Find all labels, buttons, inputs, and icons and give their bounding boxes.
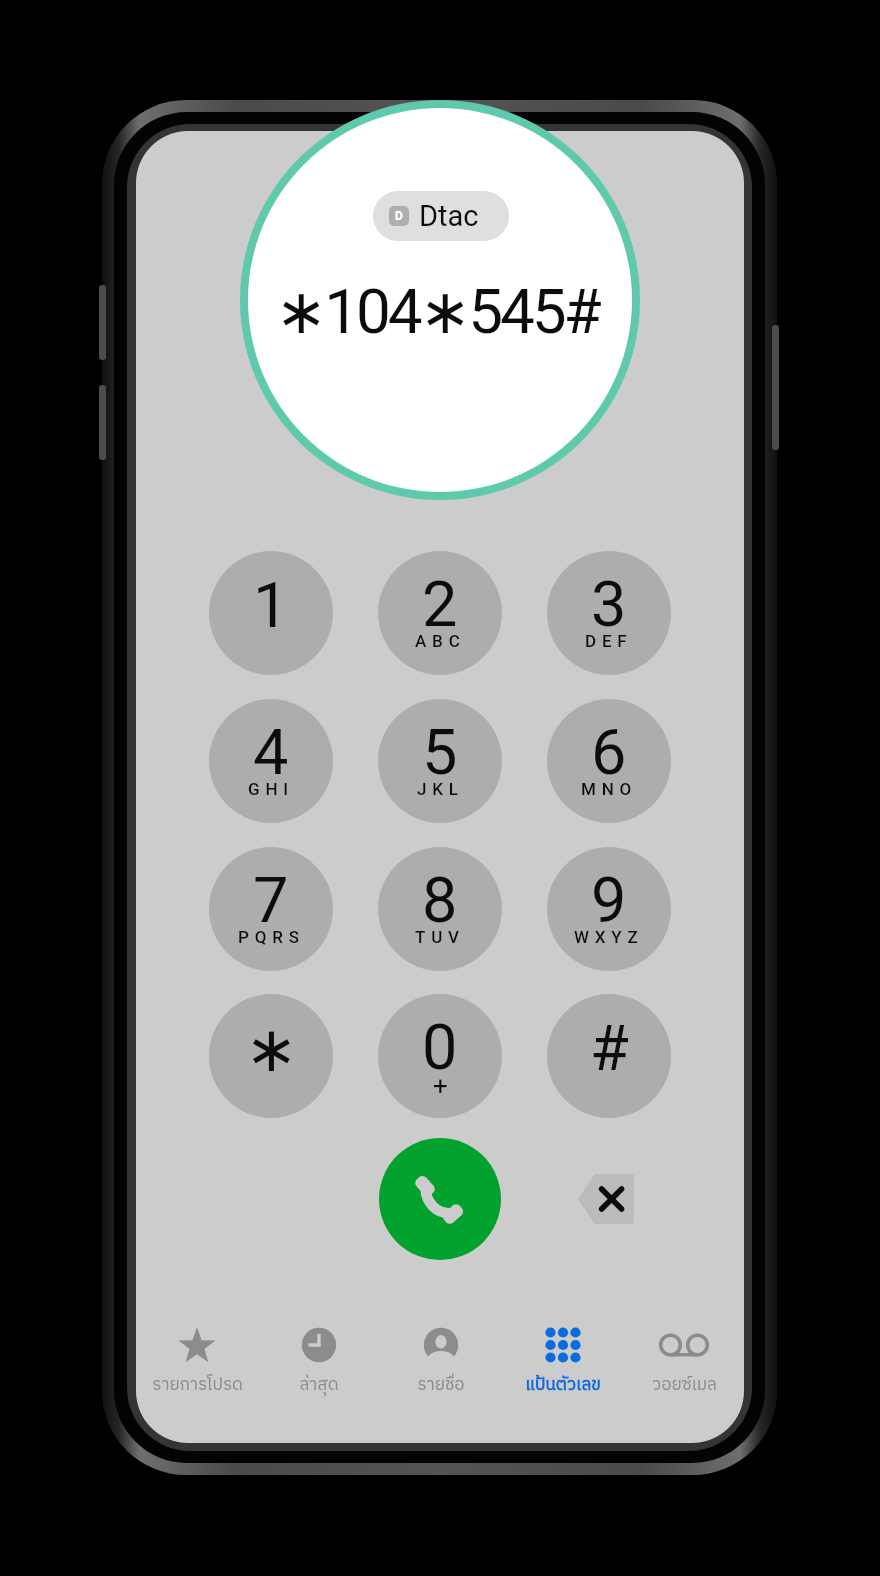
staticText: ล่าสุด	[299, 1371, 339, 1399]
button[interactable]: ∗	[209, 994, 333, 1118]
staticText: ∗104∗545#	[275, 275, 599, 348]
button[interactable]: #	[547, 994, 671, 1118]
staticText: 1	[253, 569, 289, 643]
staticText: MNO	[581, 779, 638, 799]
button[interactable]: วอยซ์เมล	[624, 1310, 744, 1420]
staticText: 7	[253, 864, 289, 938]
staticText: DEF	[585, 631, 633, 651]
staticText: ∗	[245, 1013, 298, 1086]
staticText: วอยซ์เมล	[652, 1371, 717, 1399]
staticText: 6	[591, 716, 627, 790]
button[interactable]: D	[373, 191, 509, 241]
staticText: D	[395, 209, 403, 223]
button[interactable]: Call	[379, 1138, 501, 1260]
staticText: 5	[422, 716, 458, 790]
staticText: Dtac	[419, 199, 479, 233]
button[interactable]: 5	[378, 699, 502, 823]
staticText: JKL	[417, 779, 464, 799]
staticText: 3	[591, 568, 627, 642]
staticText: 2	[422, 568, 458, 642]
button[interactable]: 7	[209, 847, 333, 971]
button[interactable]: 0	[378, 994, 502, 1118]
staticText: แป้นตัวเลข	[525, 1371, 601, 1399]
button[interactable]: รายการโปรด	[136, 1310, 258, 1420]
button[interactable]: ล่าสุด	[258, 1310, 380, 1420]
staticText: WXYZ	[574, 927, 644, 947]
button[interactable]: 9	[547, 847, 671, 971]
staticText: รายการโปรด	[152, 1371, 243, 1399]
staticText: GHI	[248, 779, 294, 799]
staticText: PQRS	[238, 927, 305, 947]
button[interactable]: Backspace	[578, 1174, 634, 1224]
staticText: รายชื่อ	[417, 1371, 465, 1399]
button[interactable]: 8	[378, 847, 502, 971]
button[interactable]: แป้นตัวเลข	[502, 1310, 624, 1420]
staticText: #	[590, 1012, 629, 1086]
button[interactable]: 3	[547, 551, 671, 675]
button[interactable]: 1	[209, 551, 333, 675]
staticText: 8	[422, 864, 458, 938]
button[interactable]: 6	[547, 699, 671, 823]
staticText: ABC	[415, 631, 466, 651]
button[interactable]: รายชื่อ	[380, 1310, 502, 1420]
staticText: 4	[253, 716, 289, 790]
staticText: +	[433, 1071, 448, 1101]
staticText: 9	[591, 864, 627, 938]
button[interactable]: 4	[209, 699, 333, 823]
button[interactable]: 2	[378, 551, 502, 675]
staticText: TUV	[415, 927, 465, 947]
staticText: 0	[422, 1011, 458, 1085]
